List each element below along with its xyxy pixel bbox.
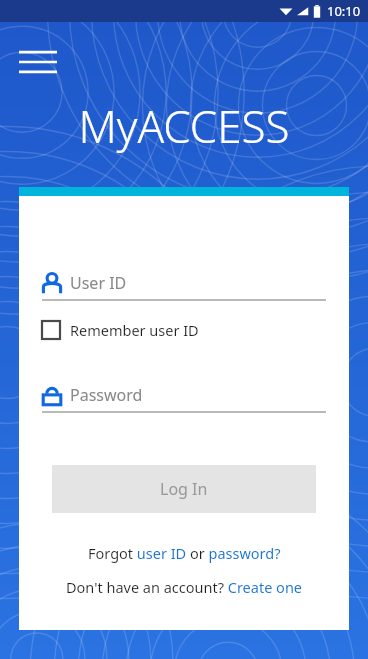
button[interactable]: User ID	[42, 267, 326, 299]
staticText: Password	[70, 384, 143, 406]
staticText: MyACCESS	[0, 96, 368, 156]
staticText: User ID	[70, 272, 127, 294]
button[interactable]: Forgot user ID or password?	[19, 540, 349, 566]
button[interactable]: Log In	[52, 465, 316, 513]
staticText: Don't have an account? Create one	[66, 577, 303, 597]
staticText: Remember user ID	[70, 320, 199, 340]
staticText: Forgot user ID or password?	[88, 543, 281, 563]
button[interactable]: Password	[42, 379, 326, 411]
staticText: Log In	[160, 478, 208, 500]
button[interactable]: Menu	[12, 42, 64, 82]
staticText: 10:10	[327, 2, 361, 20]
button[interactable]: Remember user ID	[42, 315, 199, 345]
button[interactable]: Don't have an account? Create one	[19, 574, 349, 600]
